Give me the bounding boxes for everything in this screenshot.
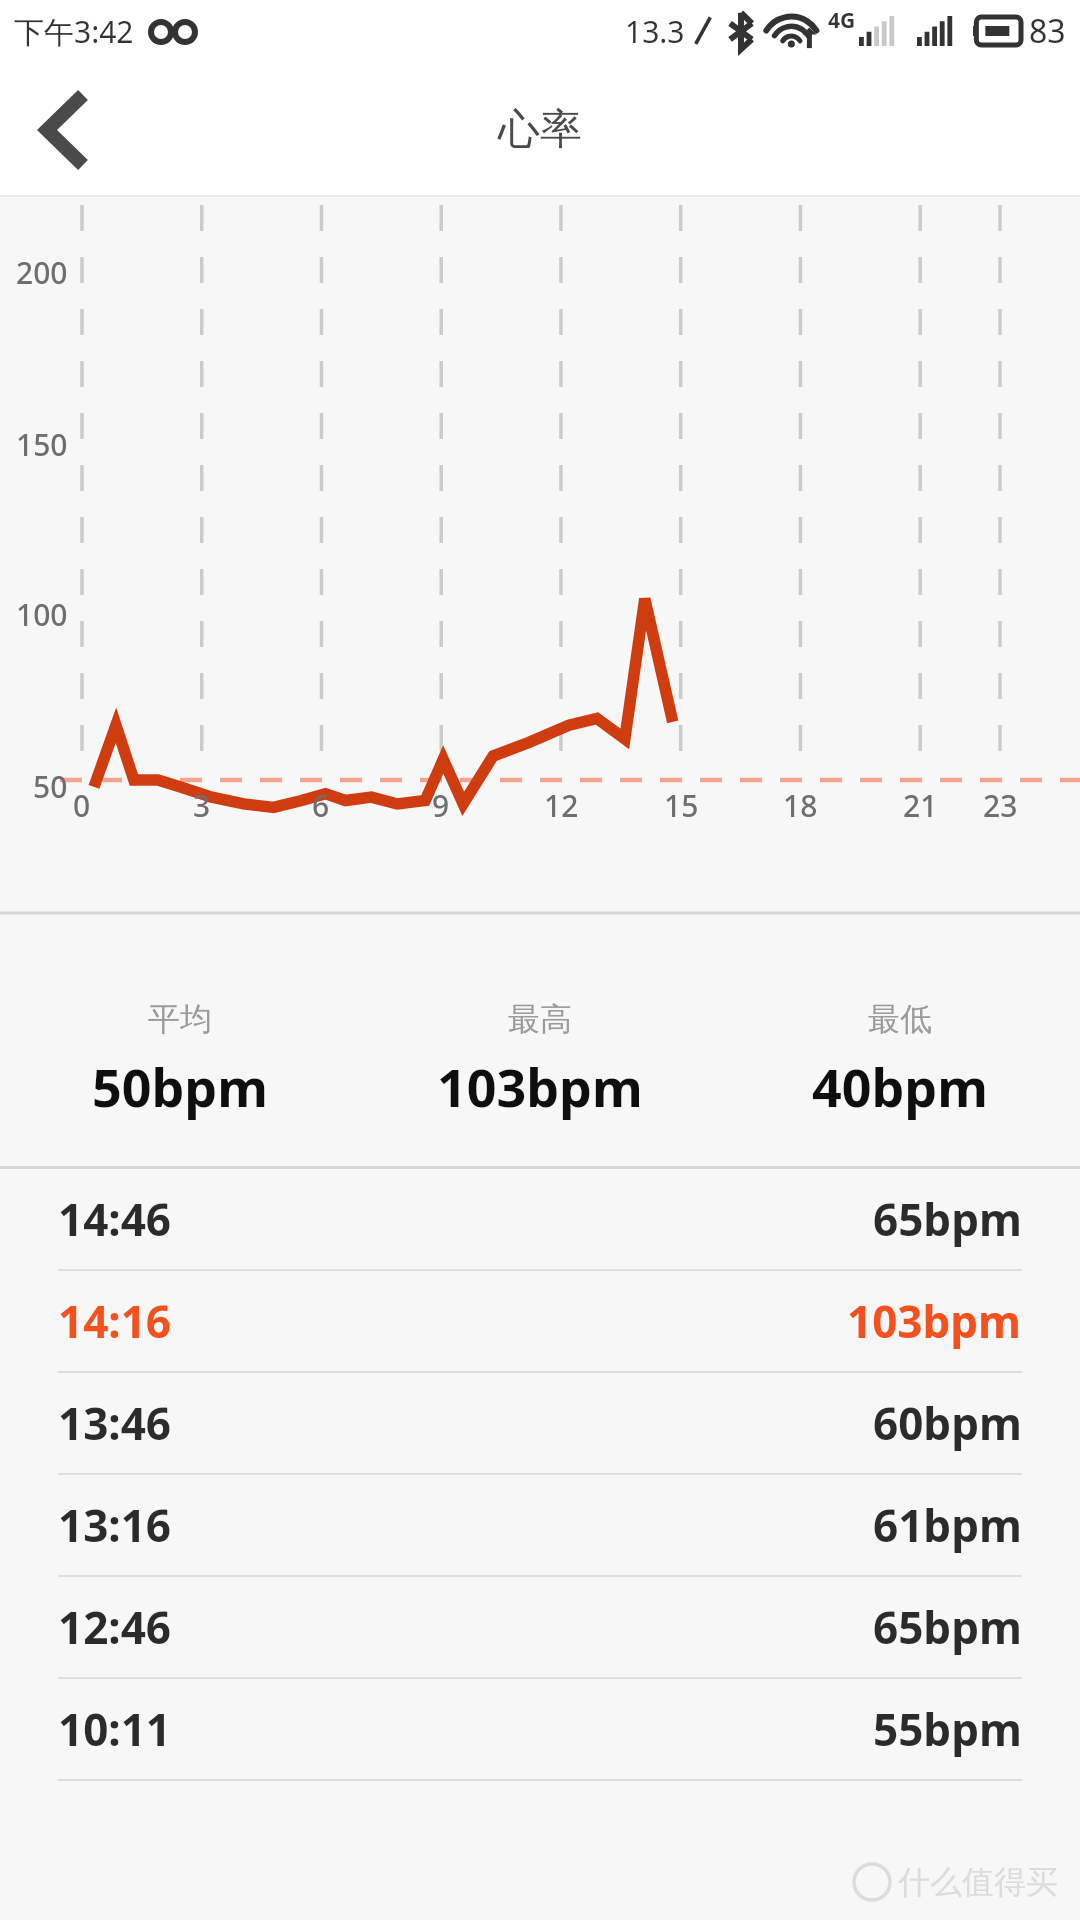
staticText: 55bpm: [873, 1699, 1022, 1759]
staticText: 100: [16, 594, 68, 635]
staticText: 13.3: [625, 11, 685, 52]
staticText: 9: [432, 785, 450, 826]
button[interactable]: 14:46: [0, 1169, 1080, 1269]
staticText: 什么值得买: [898, 1862, 1058, 1902]
staticText: 12:46: [58, 1597, 172, 1657]
staticText: 83: [1029, 9, 1066, 53]
staticText: 下午3:42: [14, 11, 134, 52]
staticText: 18: [783, 785, 818, 826]
button[interactable]: 13:16: [0, 1475, 1080, 1575]
staticText: 平均: [148, 999, 212, 1039]
button[interactable]: Back: [0, 62, 130, 197]
staticText: 150: [16, 424, 68, 465]
staticText: 15: [664, 785, 699, 826]
button[interactable]: 最低: [720, 954, 1080, 1166]
staticText: 65bpm: [873, 1189, 1022, 1249]
staticText: 14:16: [58, 1291, 172, 1351]
staticText: 14:46: [58, 1189, 172, 1249]
staticText: 50: [33, 766, 68, 807]
staticText: 3: [193, 785, 211, 826]
staticText: 最低: [868, 999, 932, 1039]
staticText: 心率: [498, 103, 582, 156]
button[interactable]: 12:46: [0, 1577, 1080, 1677]
staticText: 23: [983, 785, 1018, 826]
staticText: 40bpm: [812, 1051, 988, 1122]
staticText: 13:46: [58, 1393, 172, 1453]
staticText: 6: [312, 785, 330, 826]
staticText: 50bpm: [92, 1051, 268, 1122]
staticText: 12: [544, 785, 579, 826]
staticText: 最高: [508, 999, 572, 1039]
staticText: 103bpm: [847, 1291, 1022, 1351]
staticText: 60bpm: [873, 1393, 1022, 1453]
staticText: 103bpm: [437, 1051, 643, 1122]
button[interactable]: 14:16: [0, 1271, 1080, 1371]
button[interactable]: 平均: [0, 954, 360, 1166]
button[interactable]: 最高: [360, 954, 720, 1166]
staticText: 0: [73, 785, 91, 826]
staticText: 21: [903, 785, 938, 826]
staticText: 61bpm: [873, 1495, 1022, 1555]
staticText: 10:11: [58, 1699, 172, 1759]
staticText: 200: [16, 252, 68, 293]
staticText: 4G: [828, 6, 856, 35]
button[interactable]: 10:11: [0, 1679, 1080, 1779]
button[interactable]: 13:46: [0, 1373, 1080, 1473]
staticText: 13:16: [58, 1495, 172, 1555]
staticText: 65bpm: [873, 1597, 1022, 1657]
